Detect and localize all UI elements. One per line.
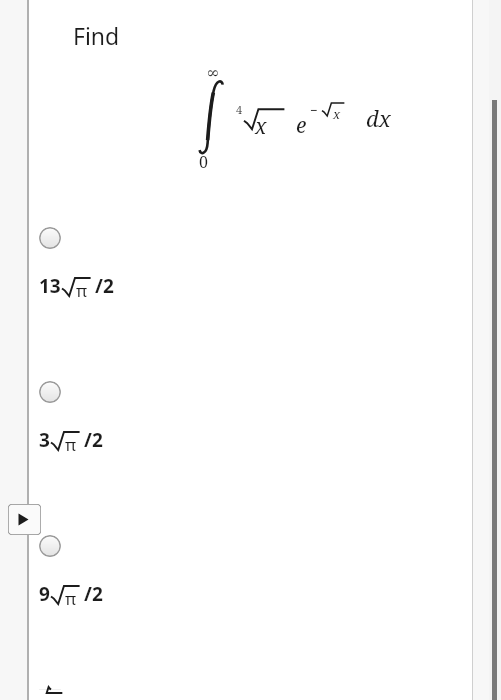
staticText: 3 — [39, 427, 50, 453]
button[interactable]: 9 — [0, 525, 501, 617]
staticText: /2 — [84, 581, 103, 607]
staticText: Find — [73, 20, 120, 51]
staticText: /2 — [95, 273, 114, 299]
staticText: e — [296, 111, 307, 140]
staticText: x — [333, 105, 341, 123]
staticText: π — [65, 433, 77, 456]
staticText: 9 — [39, 581, 50, 607]
staticText: ∞ — [206, 63, 220, 82]
button[interactable]: 13 — [0, 217, 501, 309]
staticText: x — [255, 112, 267, 141]
staticText: π — [65, 587, 77, 610]
staticText: /2 — [84, 427, 103, 453]
staticText: 13 — [39, 273, 61, 299]
staticText: 0 — [199, 151, 208, 173]
staticText: dx — [366, 103, 391, 133]
button[interactable]: Expand panel — [8, 504, 41, 535]
staticText: − — [310, 101, 318, 119]
staticText: 4 — [236, 102, 243, 117]
staticText: π — [76, 279, 88, 302]
button[interactable]: 3 — [0, 371, 501, 463]
button[interactable]: 8 — [0, 679, 501, 700]
